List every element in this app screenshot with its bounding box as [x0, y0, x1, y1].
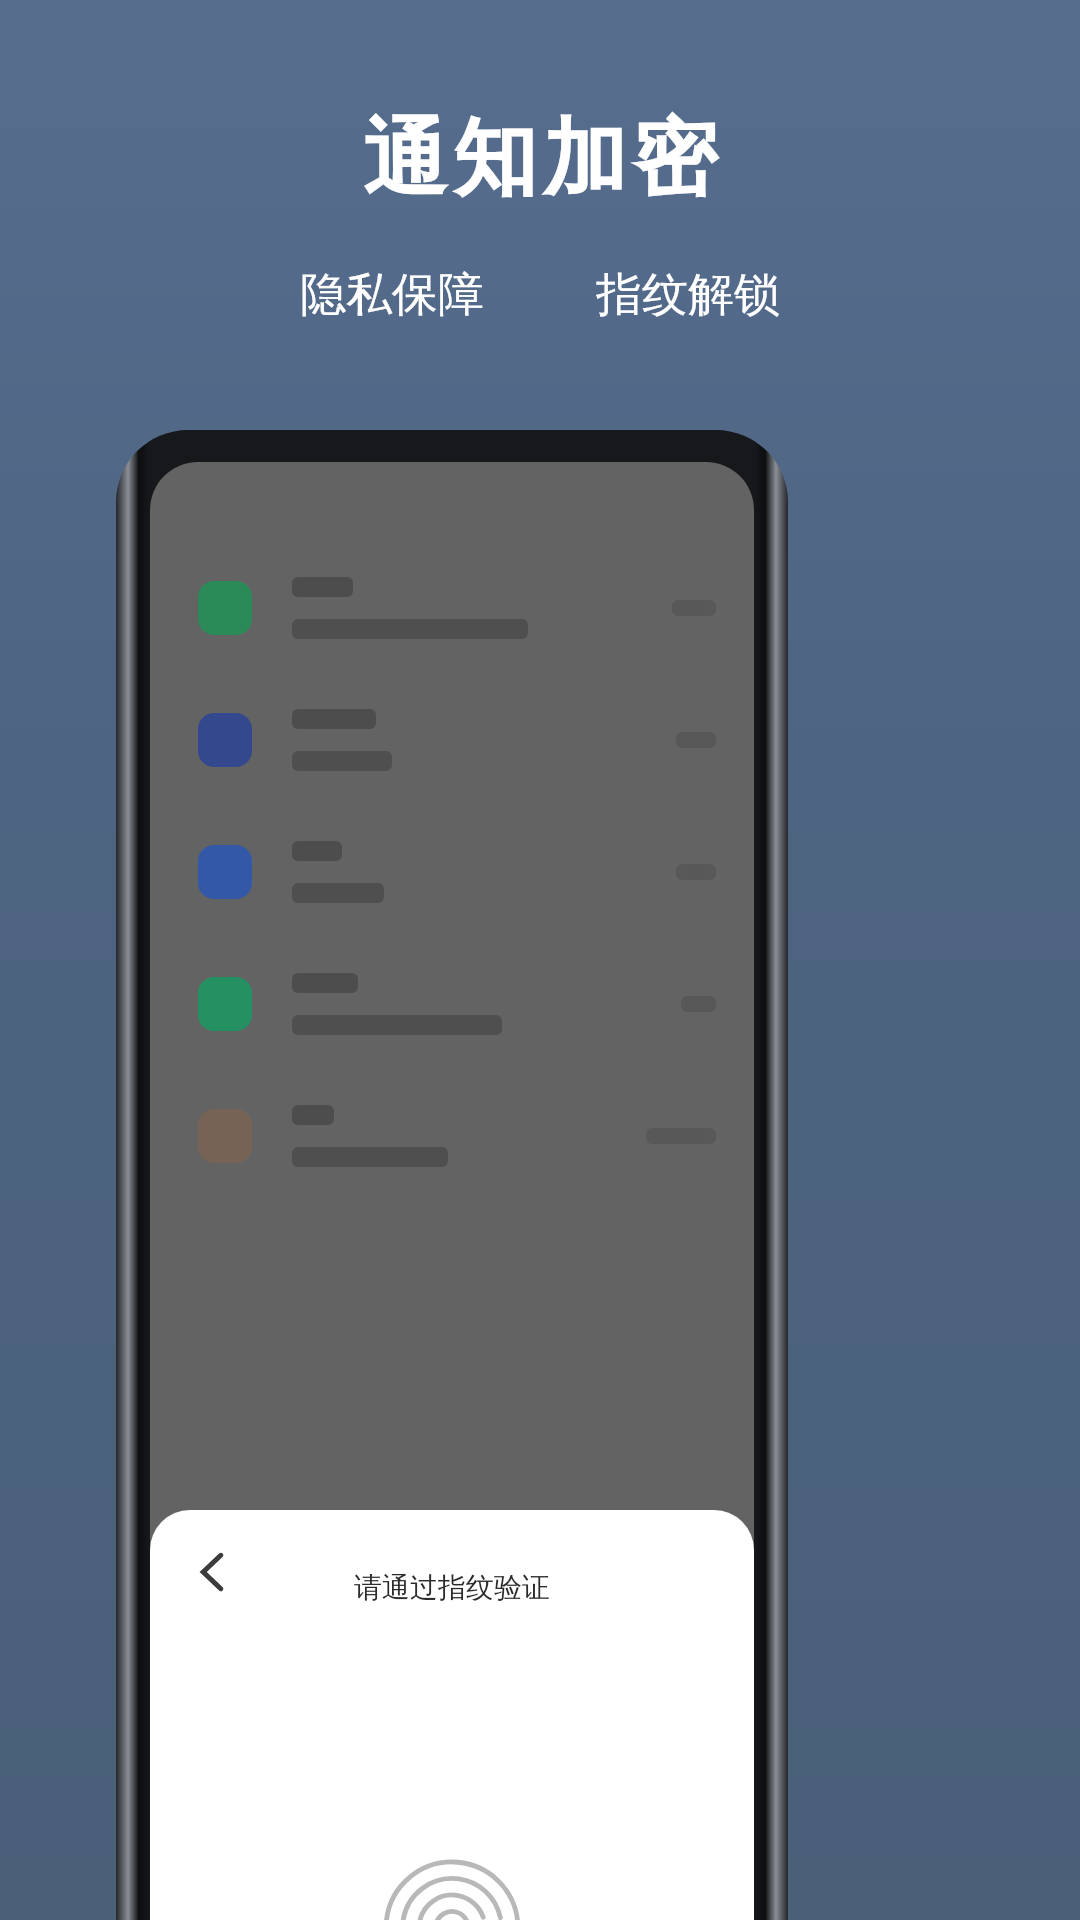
staticText: 请通过指纹验证 [354, 1570, 550, 1605]
button[interactable] [172, 806, 732, 938]
button[interactable]: 返回 [164, 1524, 260, 1620]
staticText: 隐私保障 [300, 266, 484, 324]
staticText: 通知加密 [360, 106, 720, 212]
button[interactable]: 指纹验证 [377, 1820, 527, 1920]
button[interactable] [172, 938, 732, 1070]
button[interactable] [172, 1070, 732, 1202]
button[interactable] [172, 674, 732, 806]
staticText: 指纹解锁 [596, 266, 780, 324]
button[interactable] [172, 542, 732, 674]
